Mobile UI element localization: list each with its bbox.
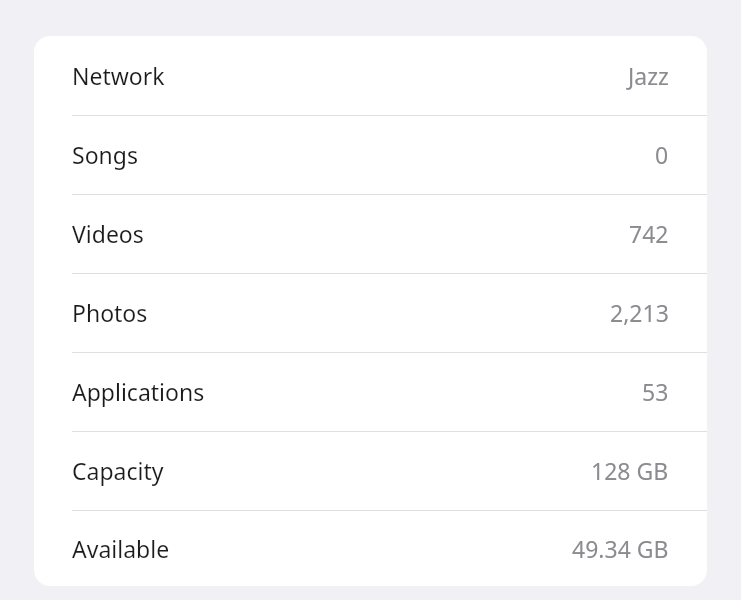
staticText: Photos: [72, 297, 148, 328]
button[interactable]: Network: [34, 36, 707, 115]
staticText: 53: [642, 376, 669, 407]
staticText: Videos: [72, 218, 144, 249]
staticText: 0: [655, 139, 669, 170]
staticText: 128 GB: [591, 455, 669, 486]
staticText: 49.34 GB: [572, 533, 669, 564]
staticText: Jazz: [628, 60, 669, 91]
button[interactable]: Videos: [34, 194, 707, 273]
button[interactable]: Available: [34, 510, 707, 586]
staticText: Available: [72, 533, 170, 564]
staticText: Songs: [72, 139, 138, 170]
staticText: Applications: [72, 376, 205, 407]
staticText: Network: [72, 60, 165, 91]
button[interactable]: Capacity: [34, 431, 707, 510]
staticText: Capacity: [72, 455, 164, 486]
button[interactable]: Applications: [34, 352, 707, 431]
staticText: 742: [629, 218, 669, 249]
staticText: 2,213: [610, 297, 669, 328]
button[interactable]: Photos: [34, 273, 707, 352]
button[interactable]: Songs: [34, 115, 707, 194]
